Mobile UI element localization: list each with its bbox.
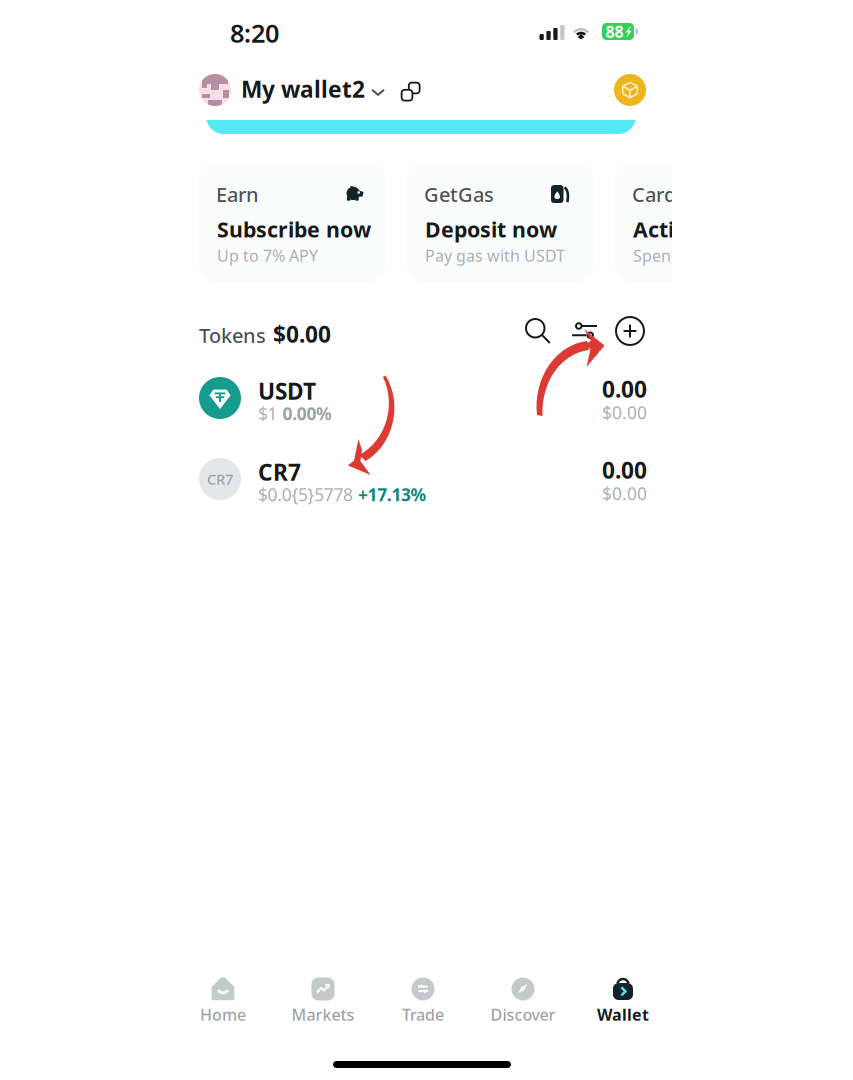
button[interactable]: Rewards	[614, 74, 646, 106]
staticText: $0.0{5}5778	[258, 483, 353, 506]
staticText: $1	[258, 402, 278, 425]
staticText: 88	[605, 21, 623, 42]
staticText: 0.00	[602, 455, 647, 485]
staticText: 0.00%	[283, 402, 332, 425]
staticText: Activate	[633, 215, 721, 243]
staticText: $0.00	[602, 401, 647, 424]
staticText: +17.13%	[358, 483, 427, 506]
button[interactable]: Copy address	[391, 72, 423, 104]
staticText: Subscribe now	[217, 215, 371, 243]
staticText: Card	[632, 181, 676, 208]
staticText: CR7	[258, 457, 301, 487]
staticText: Discover	[490, 1004, 555, 1025]
button[interactable]: Add token	[612, 313, 648, 349]
button[interactable]: Filter	[567, 314, 602, 349]
button[interactable]: My wallet2	[199, 72, 395, 108]
button[interactable]: Card	[615, 163, 801, 282]
staticText: 0.00	[602, 374, 647, 404]
staticText: Markets	[291, 1004, 354, 1025]
button[interactable]: USDT	[199, 370, 647, 426]
button[interactable]: Markets	[273, 976, 373, 1028]
staticText: Earn	[216, 181, 259, 208]
staticText: Deposit now	[425, 215, 557, 243]
button[interactable]: GetGas	[407, 163, 593, 282]
staticText: Up to 7% APY	[217, 245, 318, 266]
staticText: Wallet	[597, 1004, 649, 1025]
staticText: CR7	[207, 469, 233, 489]
button[interactable]: Home	[173, 976, 273, 1028]
staticText: 8:20	[230, 16, 279, 50]
button[interactable]: Discover	[473, 976, 573, 1028]
staticText: Trade	[402, 1004, 444, 1025]
staticText: $0.00	[273, 319, 331, 349]
staticText: Pay gas with USDT	[425, 245, 565, 266]
button[interactable]: Wallet	[573, 976, 673, 1028]
button[interactable]: Search	[521, 314, 556, 349]
staticText: Home	[200, 1004, 246, 1025]
staticText: GetGas	[424, 181, 494, 208]
staticText: My wallet2	[241, 74, 365, 104]
staticText: $0.00	[602, 482, 647, 505]
button[interactable]: Trade	[373, 976, 473, 1028]
staticText: Spend crypto	[633, 245, 734, 266]
staticText: USDT	[258, 376, 316, 406]
staticText: Tokens	[199, 322, 266, 349]
button[interactable]: CR7	[199, 451, 647, 507]
button[interactable]: Earn	[199, 163, 385, 282]
